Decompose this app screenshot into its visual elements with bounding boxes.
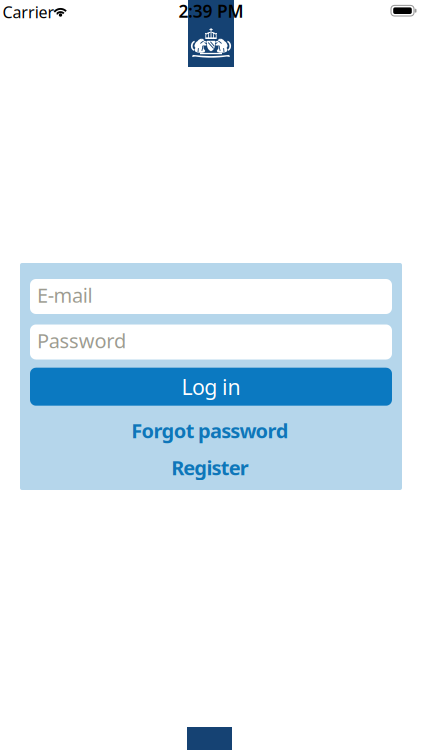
staticText: Carrier xyxy=(3,1,54,23)
button[interactable]: Forgot password xyxy=(131,417,289,444)
button[interactable]: Register xyxy=(171,454,249,481)
textField[interactable]: Password xyxy=(37,327,211,354)
staticText: 2:39 PM xyxy=(178,0,244,22)
staticText: Log in xyxy=(181,372,240,401)
textField[interactable]: E-mail xyxy=(37,282,211,308)
button[interactable]: Log in xyxy=(30,368,392,406)
staticText: Forgot password xyxy=(131,417,289,444)
staticText: E-mail xyxy=(37,282,92,308)
staticText: Register xyxy=(171,454,249,481)
staticText: Password xyxy=(37,327,126,354)
